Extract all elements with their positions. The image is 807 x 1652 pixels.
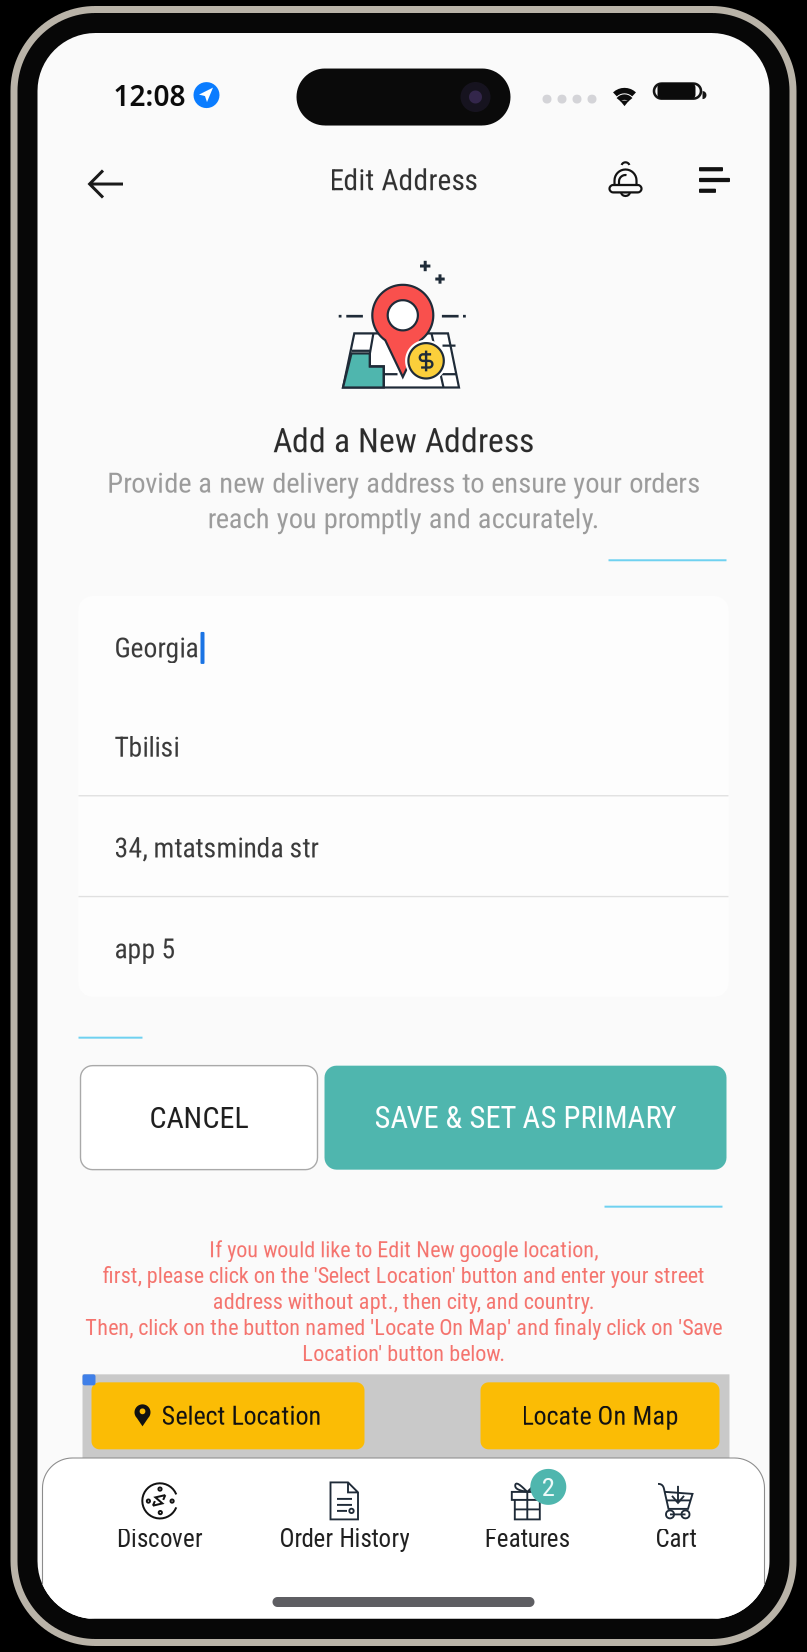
staticText: Select Location [161,1400,321,1431]
staticText: If you would like to Edit New google loc… [209,1237,598,1263]
staticText: address without apt., then city, and cou… [212,1288,594,1314]
button[interactable]: Order History [254,1466,435,1563]
button[interactable]: Back [67,148,145,220]
staticText: Provide a new delivery address to ensure… [107,466,700,500]
button[interactable]: Select Location [91,1382,364,1449]
staticText: Discover [117,1524,203,1553]
button[interactable]: SAVE & SET AS PRIMARY [324,1066,726,1170]
staticText: CANCEL [149,1100,248,1135]
staticText: Order History [279,1524,409,1553]
staticText: SAVE & SET AS PRIMARY [374,1100,676,1136]
staticText: Cart [655,1524,696,1553]
button[interactable]: Locate On Map [480,1382,719,1449]
staticText: 12:08 [113,76,185,114]
staticText: Edit Address [329,163,477,197]
staticText: 2 [542,1471,555,1503]
staticText: Tbilisi [114,731,179,763]
staticText: Features [485,1524,570,1553]
staticText: Locate On Map [521,1400,678,1431]
staticText: Add a New Address [273,421,534,460]
staticText: 34, mtatsminda str [114,832,318,864]
button[interactable]: 2 [435,1466,620,1563]
staticText: reach you promptly and accurately. [207,502,599,535]
button[interactable]: Cart [620,1466,732,1563]
button[interactable]: CANCEL [80,1066,317,1170]
staticText: Location' button below. [302,1340,505,1366]
staticText: Then, click on the button named 'Locate … [85,1314,722,1340]
staticText: first, please click on the 'Select Locat… [102,1263,704,1288]
button[interactable]: Discover [65,1466,254,1563]
staticText: Georgia [114,632,198,664]
button[interactable]: Menu [677,148,751,220]
button[interactable]: Notifications [573,148,677,220]
staticText: app 5 [114,933,175,965]
